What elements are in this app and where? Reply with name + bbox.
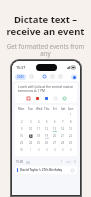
staticText: 3 [30, 120, 32, 124]
button[interactable]: 24 [26, 140, 35, 147]
staticText: Thu [44, 107, 50, 111]
staticText: 6 [70, 148, 72, 152]
staticText: 18 [37, 134, 41, 138]
button[interactable]: Today [42, 74, 47, 79]
staticText: Lunch with Julia at the central station … [18, 85, 74, 93]
staticText: Mon [18, 107, 25, 111]
button[interactable]: 20 [51, 133, 59, 140]
staticText: 12 [45, 127, 49, 131]
button[interactable]: 29 [67, 140, 75, 147]
button[interactable]: Lunch with Julia at the central station … [15, 83, 77, 103]
staticText: Dictate text – receive an event [6, 13, 85, 38]
button[interactable]: 3 [43, 147, 51, 154]
button[interactable]: 21 [59, 133, 67, 140]
staticText: Get formatted events from any spoken not… [5, 42, 86, 66]
button[interactable]: Filter [58, 74, 63, 79]
button[interactable]: 3 [26, 119, 35, 126]
button[interactable]: 5 [59, 147, 67, 154]
staticText: Wed [36, 107, 43, 111]
button[interactable]: Month view [15, 74, 26, 80]
staticText: 5 [62, 148, 64, 152]
button[interactable]: 2 [17, 119, 26, 126]
button[interactable]: David Taylor's 27th Birthday [15, 166, 77, 174]
button[interactable]: 6 [67, 147, 75, 154]
button[interactable]: 27 [51, 140, 59, 147]
button[interactable]: 6 [51, 119, 59, 126]
staticText: Tue [28, 107, 34, 111]
button[interactable]: 19 [43, 133, 51, 140]
button[interactable]: 2 [35, 147, 43, 154]
button[interactable]: List [50, 74, 55, 79]
staticText: 20 [53, 134, 57, 138]
button[interactable]: 15 [67, 126, 75, 133]
staticText: 13 [53, 127, 57, 131]
staticText: Sun [68, 107, 74, 111]
staticText: 28 [61, 141, 65, 145]
staticText: 3 [74, 160, 76, 164]
button[interactable]: 22 [67, 133, 75, 140]
staticText: 27 [53, 141, 57, 145]
button[interactable]: 17 [26, 133, 35, 140]
staticText: 30 [20, 148, 24, 152]
button[interactable]: 9 [17, 126, 26, 133]
button[interactable]: 10 [26, 126, 35, 133]
staticText: 5 [46, 120, 48, 124]
button[interactable]: 5 [43, 119, 51, 126]
staticText: 8 [70, 120, 72, 124]
staticText: 21 [61, 134, 65, 138]
staticText: 1 [70, 113, 72, 117]
staticText: 25 [37, 141, 41, 145]
button[interactable]: 23 [17, 140, 26, 147]
staticText: 14 [61, 127, 65, 131]
staticText: 9 [21, 127, 23, 131]
button[interactable]: 1 [26, 147, 35, 154]
button[interactable]: 8 [67, 119, 75, 126]
button[interactable]: Action [35, 96, 40, 101]
staticText: 10 [29, 127, 33, 131]
staticText: 1 [61, 160, 63, 164]
staticText: 1 [30, 148, 32, 152]
staticText: 15:37 [16, 65, 26, 70]
button[interactable]: 1 [67, 112, 75, 119]
button[interactable]: 28 [59, 140, 67, 147]
staticText: 24 [29, 141, 33, 145]
button[interactable]: 4 [51, 147, 59, 154]
button[interactable]: 12 [43, 126, 51, 133]
button[interactable]: 13 [51, 126, 59, 133]
staticText: 7 [62, 120, 64, 124]
staticText: 4 [54, 148, 56, 152]
button[interactable]: 18 [35, 133, 43, 140]
button[interactable]: Search [29, 74, 34, 79]
button[interactable]: Action [44, 96, 49, 101]
button[interactable]: 4 [35, 119, 43, 126]
staticText: 6 [54, 120, 56, 124]
staticText: 22 [69, 134, 73, 138]
staticText: 3 [46, 148, 48, 152]
button[interactable]: 14 [59, 126, 67, 133]
button[interactable]: 26 [43, 140, 51, 147]
button[interactable]: Profile [71, 74, 77, 80]
staticText: 2 [38, 148, 40, 152]
button[interactable]: Action [53, 96, 58, 101]
staticText: Fri [53, 107, 57, 111]
button[interactable]: 7 [59, 119, 67, 126]
staticText: 2 [21, 120, 23, 124]
button[interactable]: Action [26, 96, 31, 101]
staticText: 17 [30, 134, 33, 138]
staticText: 29 [69, 141, 73, 145]
staticText: 11 [37, 127, 41, 131]
button[interactable]: 16 [17, 133, 26, 140]
button[interactable]: 11 [35, 126, 43, 133]
staticText: 15 [69, 127, 73, 131]
staticText: 19 [45, 134, 49, 138]
button[interactable]: 25 [35, 140, 43, 147]
button[interactable]: 30 [17, 147, 26, 154]
staticText: 16 [20, 134, 24, 138]
button[interactable]: Action [62, 96, 67, 101]
